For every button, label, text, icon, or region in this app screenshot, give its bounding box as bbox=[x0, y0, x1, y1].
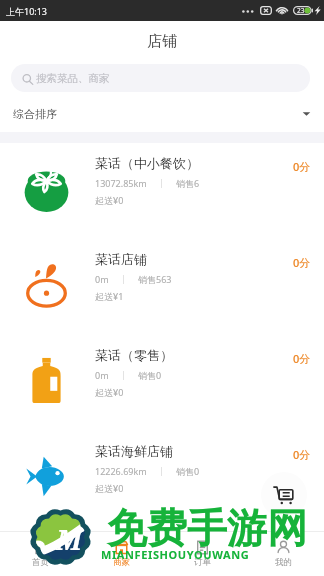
staticText: 综合排序 bbox=[13, 107, 57, 121]
staticText: 上午10:13 bbox=[6, 5, 48, 17]
staticText: 我的 bbox=[275, 557, 292, 568]
staticText: 起送¥0 bbox=[95, 482, 124, 494]
button[interactable]: 购物车 bbox=[261, 472, 307, 518]
staticText: 免费手游网 bbox=[107, 503, 307, 553]
button[interactable]: 菜话（中小餐饮） bbox=[0, 143, 324, 239]
staticText: 销售0 bbox=[176, 465, 200, 477]
staticText: 销售563 bbox=[138, 273, 172, 285]
button[interactable]: 我的 bbox=[243, 540, 324, 568]
button[interactable]: 订单 bbox=[162, 540, 243, 568]
button[interactable]: 菜话（零售） bbox=[0, 335, 324, 431]
staticText: 12226.69km bbox=[95, 465, 147, 477]
staticText: 23 bbox=[297, 6, 305, 15]
button[interactable]: 搜索菜品、商家 bbox=[11, 64, 310, 92]
staticText: 0分 bbox=[293, 255, 311, 270]
staticText: 13072.85km bbox=[95, 177, 147, 189]
staticText: 起送¥1 bbox=[95, 290, 124, 302]
button[interactable]: 商家 bbox=[81, 540, 162, 568]
staticText: 菜话（零售） bbox=[95, 347, 173, 363]
staticText: 首页 bbox=[32, 557, 49, 568]
staticText: M bbox=[56, 521, 82, 558]
staticText: 菜话（中小餐饮） bbox=[95, 155, 199, 171]
staticText: 销售6 bbox=[176, 177, 200, 189]
staticText: 起送¥0 bbox=[95, 194, 124, 206]
button[interactable]: 菜话海鲜店铺 bbox=[0, 431, 324, 527]
staticText: 起送¥0 bbox=[95, 386, 124, 398]
staticText: 菜话海鲜店铺 bbox=[95, 443, 173, 459]
staticText: 店铺 bbox=[147, 32, 177, 51]
button[interactable]: 首页 bbox=[0, 540, 81, 568]
staticText: 订单 bbox=[194, 557, 211, 568]
staticText: 销售0 bbox=[138, 369, 162, 381]
staticText: 0分 bbox=[293, 351, 311, 366]
button[interactable]: 菜话店铺 bbox=[0, 239, 324, 335]
button[interactable]: 综合排序 bbox=[0, 92, 324, 132]
staticText: 0分 bbox=[293, 159, 311, 174]
staticText: 0m bbox=[95, 369, 109, 381]
staticText: MIANFEISHOUYOUWANG bbox=[101, 547, 250, 562]
staticText: 商家 bbox=[113, 557, 130, 568]
staticText: 0m bbox=[95, 273, 109, 285]
staticText: 菜话店铺 bbox=[95, 251, 147, 267]
staticText: 搜索菜品、商家 bbox=[36, 72, 110, 85]
staticText: 0分 bbox=[293, 447, 311, 462]
